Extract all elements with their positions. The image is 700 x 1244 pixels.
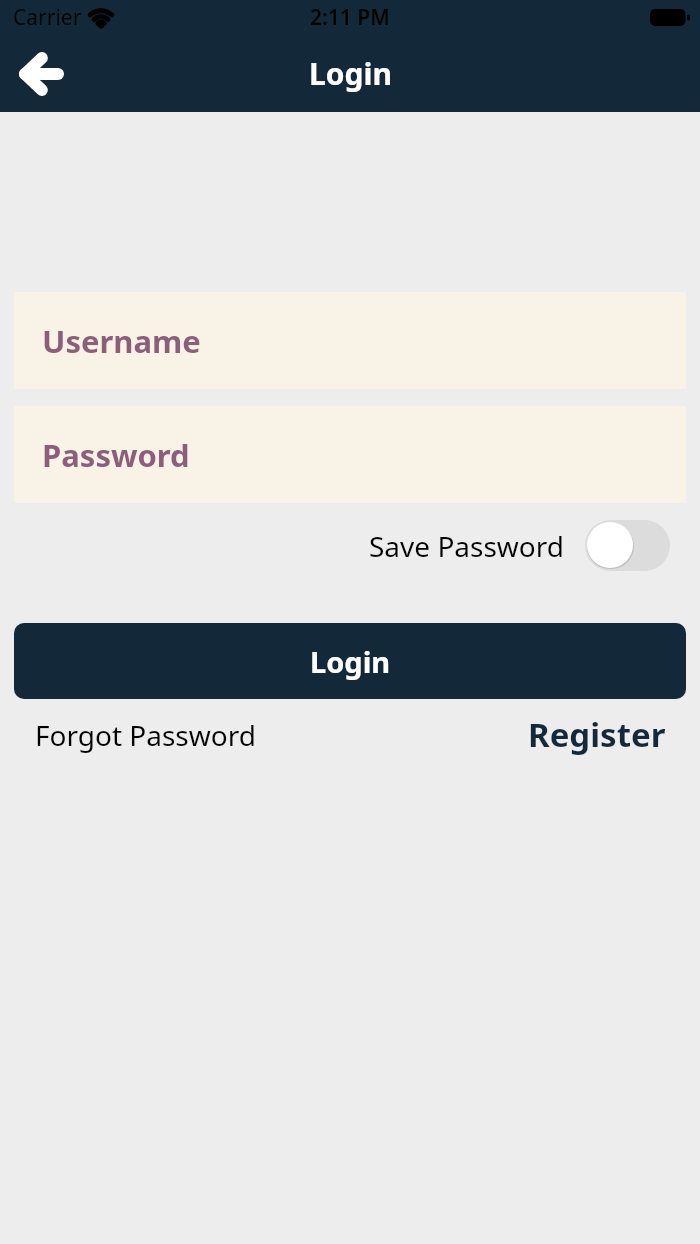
button[interactable]: Forgot Password [35,716,256,754]
staticText: Login [310,642,391,681]
staticText: Register [528,712,666,757]
button[interactable]: Password [14,406,686,503]
button[interactable] [10,43,72,105]
staticText: 2:11 PM [310,3,390,32]
button[interactable] [585,520,670,571]
staticText: Login [309,53,392,94]
staticText: Carrier [13,3,82,32]
button[interactable]: Username [14,292,686,389]
staticText: Forgot Password [35,716,256,754]
staticText: Username [42,320,201,362]
staticText: Password [42,434,190,476]
staticText: Save Password [369,527,565,565]
button[interactable]: Register [528,712,666,757]
button[interactable]: Login [14,623,686,699]
